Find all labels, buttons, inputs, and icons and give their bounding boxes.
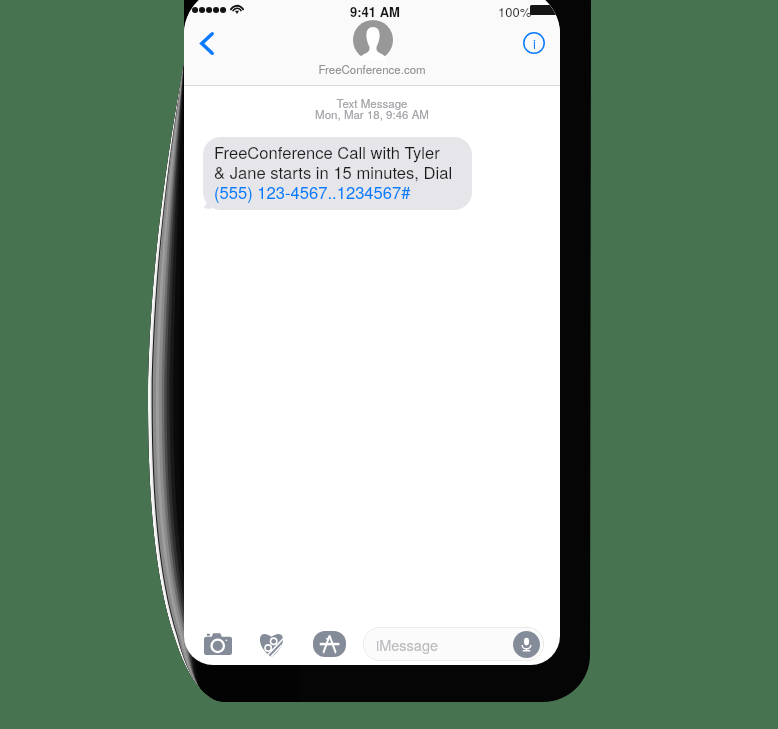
button[interactable]: Dictate xyxy=(513,631,540,658)
staticText: FreeConference.com xyxy=(184,61,560,77)
staticText: Text Message Mon, Mar 18, 9:46 AM xyxy=(184,95,560,122)
button[interactable]: Camera xyxy=(200,626,236,662)
staticText: 100% xyxy=(498,2,532,21)
staticText: FreeConference Call with Tyler & Jane st… xyxy=(214,140,453,204)
button[interactable]: Back xyxy=(190,26,224,60)
button[interactable] xyxy=(353,20,393,60)
button[interactable]: App Store xyxy=(311,626,347,662)
staticText: iMessage xyxy=(376,634,439,655)
button[interactable]: Digital Touch xyxy=(253,626,289,662)
staticText: 9:41 AM xyxy=(350,2,400,21)
button[interactable]: iMessage xyxy=(363,627,544,661)
staticText: i xyxy=(533,34,536,53)
button[interactable]: FreeConference Call with Tyler & Jane st… xyxy=(203,137,472,210)
button[interactable]: Details xyxy=(520,29,548,57)
